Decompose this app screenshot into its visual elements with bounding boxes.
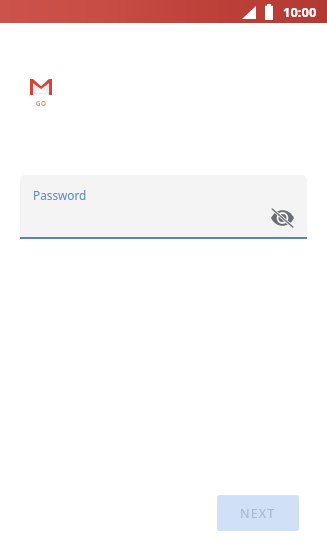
button[interactable]: NEXT [217, 495, 299, 531]
staticText: 10:00 [283, 3, 317, 21]
staticText: Password [33, 187, 87, 203]
button[interactable]: Toggle password visibility [270, 205, 295, 230]
staticText: NEXT [240, 505, 276, 522]
staticText: GO [36, 99, 47, 107]
button[interactable]: Password [20, 175, 307, 237]
